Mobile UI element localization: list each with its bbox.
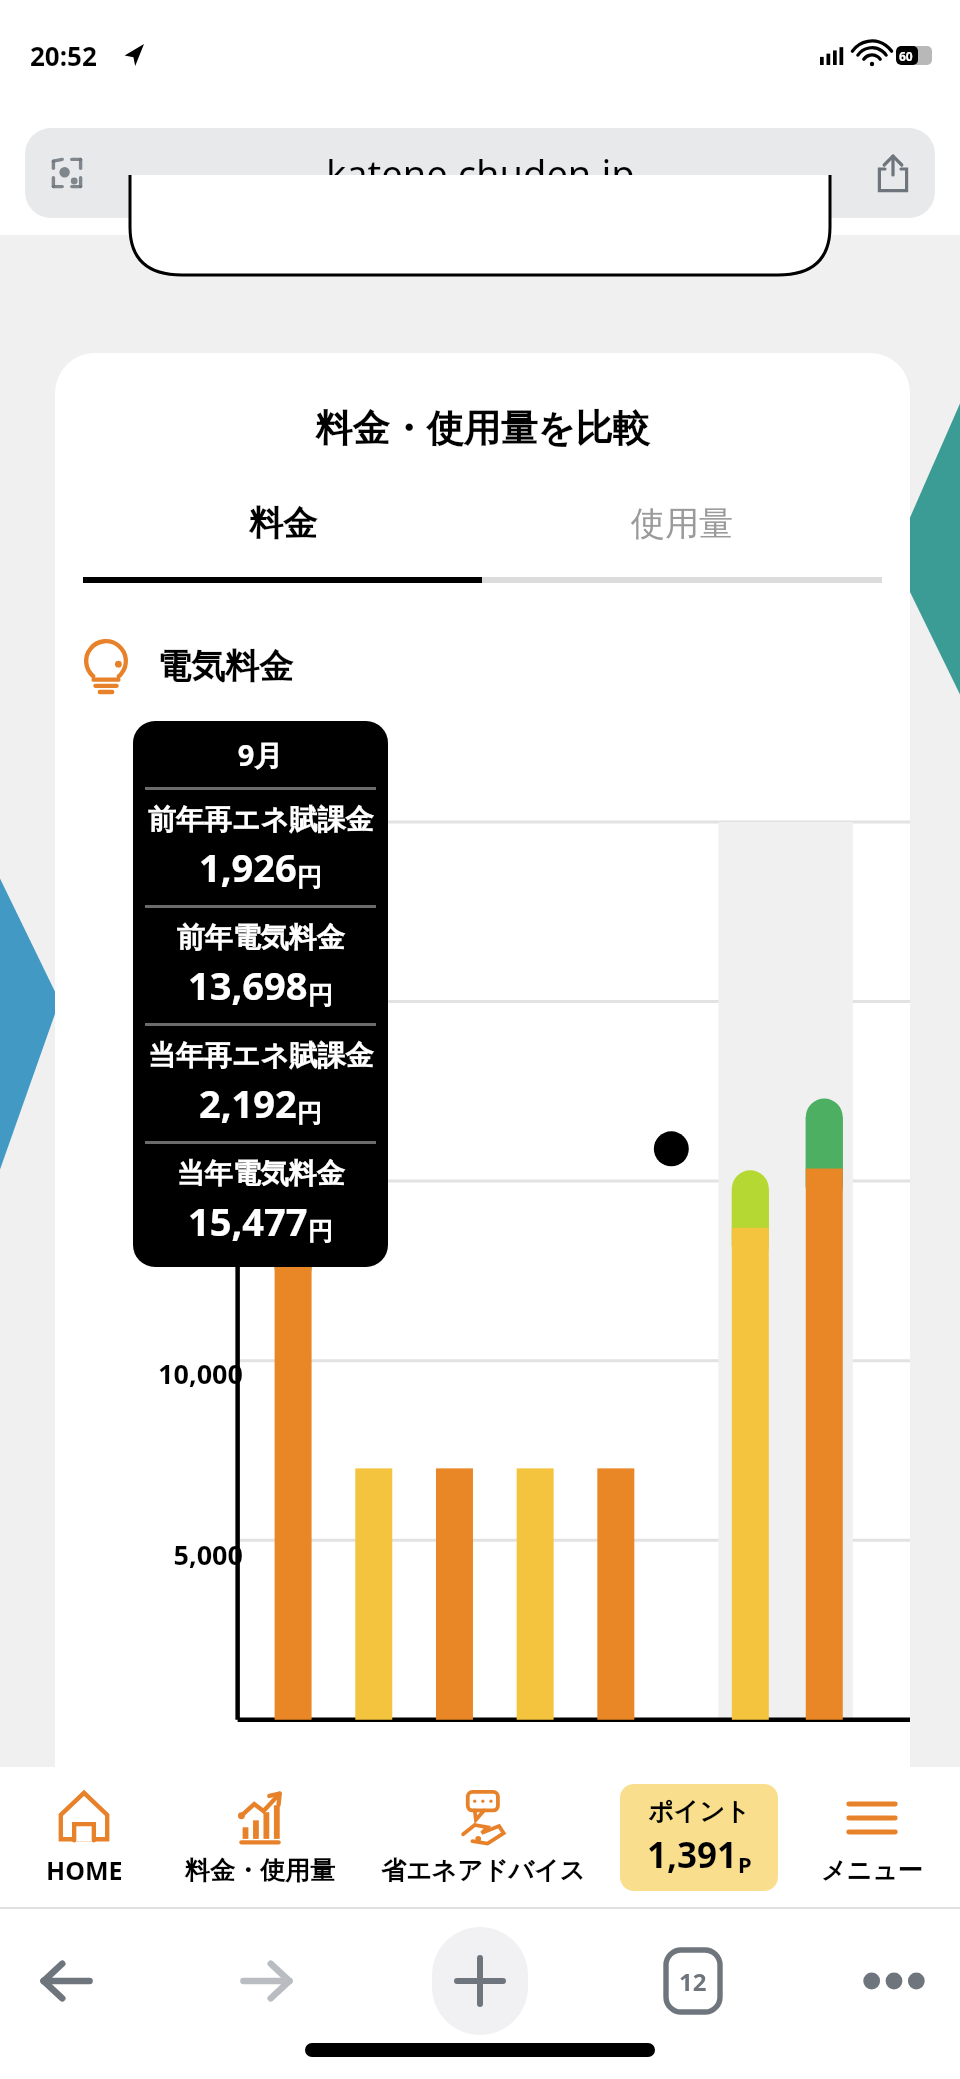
staticText: 使用量 [631,502,733,545]
staticText: メニュー [821,1855,923,1886]
staticText: 料金 [249,502,317,545]
button[interactable]: 料金・使用量 [162,1767,358,1907]
staticText: 15,477 [188,1195,308,1247]
button[interactable]: HOME [6,1767,162,1907]
button[interactable]: More [858,1945,930,2017]
staticText: 料金・使用量を比較 [55,405,910,452]
staticText: 15,000 [95,1174,243,1211]
staticText: P [738,1849,752,1879]
staticText: 電気料金 [157,645,293,688]
staticText: 9月 [145,735,376,775]
button[interactable]: Tabs [657,1945,729,2017]
staticText: 2,192 [199,1077,297,1129]
staticText: 料金・使用量 [185,1855,335,1886]
staticText: 1,926 [199,841,297,893]
staticText: 13,698 [188,959,308,1011]
button[interactable]: ポイント [620,1784,778,1891]
staticText: 円 [297,862,322,893]
staticText: 20,000 [95,993,243,1030]
staticText: 1,391 [647,1831,738,1879]
button[interactable]: New tab [432,1927,528,2035]
staticText: 10,000 [95,1355,243,1392]
staticText: 60 [899,48,913,64]
staticText: 円 [297,1098,322,1129]
button[interactable]: 使用量 [482,494,882,553]
staticText: 円 [308,980,333,1011]
button[interactable]: Forward [231,1945,303,2017]
staticText: 25,000 [95,811,243,848]
staticText: 前年再エネ賦課金 [145,802,376,837]
staticText: HOME [46,1853,123,1887]
staticText: 前年電気料金 [145,920,376,955]
staticText: 当年電気料金 [145,1156,376,1191]
staticText: 12 [679,1965,707,1998]
staticText: 省エネアドバイス [381,1855,586,1886]
staticText: 20:52 [30,38,97,73]
staticText: 当年再エネ賦課金 [145,1038,376,1073]
staticText: 円 [308,1216,333,1247]
staticText: 5,000 [95,1536,243,1573]
staticText: katene.chuden.jp [326,147,635,199]
other: Share [873,153,913,193]
button[interactable]: Back [30,1945,102,2017]
button[interactable]: 省エネアドバイス [358,1767,609,1907]
button[interactable]: メニュー [789,1767,954,1907]
other: Page settings [47,153,87,193]
staticText: ポイント [648,1796,751,1827]
button[interactable]: Page settings [25,128,935,218]
button[interactable]: 料金 [83,494,482,553]
